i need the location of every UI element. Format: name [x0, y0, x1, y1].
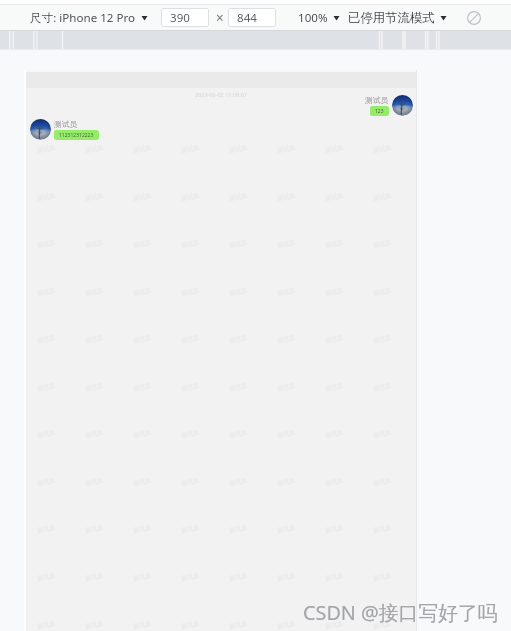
button[interactable]: 尺寸: iPhone 12 Pro	[30, 7, 148, 29]
button[interactable]: 112312312223	[59, 130, 94, 140]
staticText: 测试员	[324, 619, 344, 631]
button[interactable]: 已停用节流模式	[348, 7, 447, 29]
staticText: 123	[375, 108, 384, 115]
staticText: 已停用节流模式	[348, 10, 435, 26]
button[interactable]: No throttling	[464, 8, 484, 28]
staticText: 100%	[298, 10, 328, 26]
staticText: 390	[170, 10, 190, 26]
staticText: 844	[237, 10, 257, 26]
staticText: 112312312223	[59, 132, 94, 139]
button[interactable]: 844	[228, 8, 276, 27]
button[interactable]: Avatar	[30, 119, 51, 140]
button[interactable]: 123	[375, 106, 384, 116]
staticText: CSDN @接口写好了吗	[303, 599, 498, 626]
staticText: 测试员	[54, 119, 78, 129]
button[interactable]: Avatar	[392, 95, 413, 116]
button[interactable]: 100%	[298, 7, 340, 29]
staticText: 测试员	[372, 619, 392, 631]
button[interactable]: 390	[161, 8, 209, 27]
